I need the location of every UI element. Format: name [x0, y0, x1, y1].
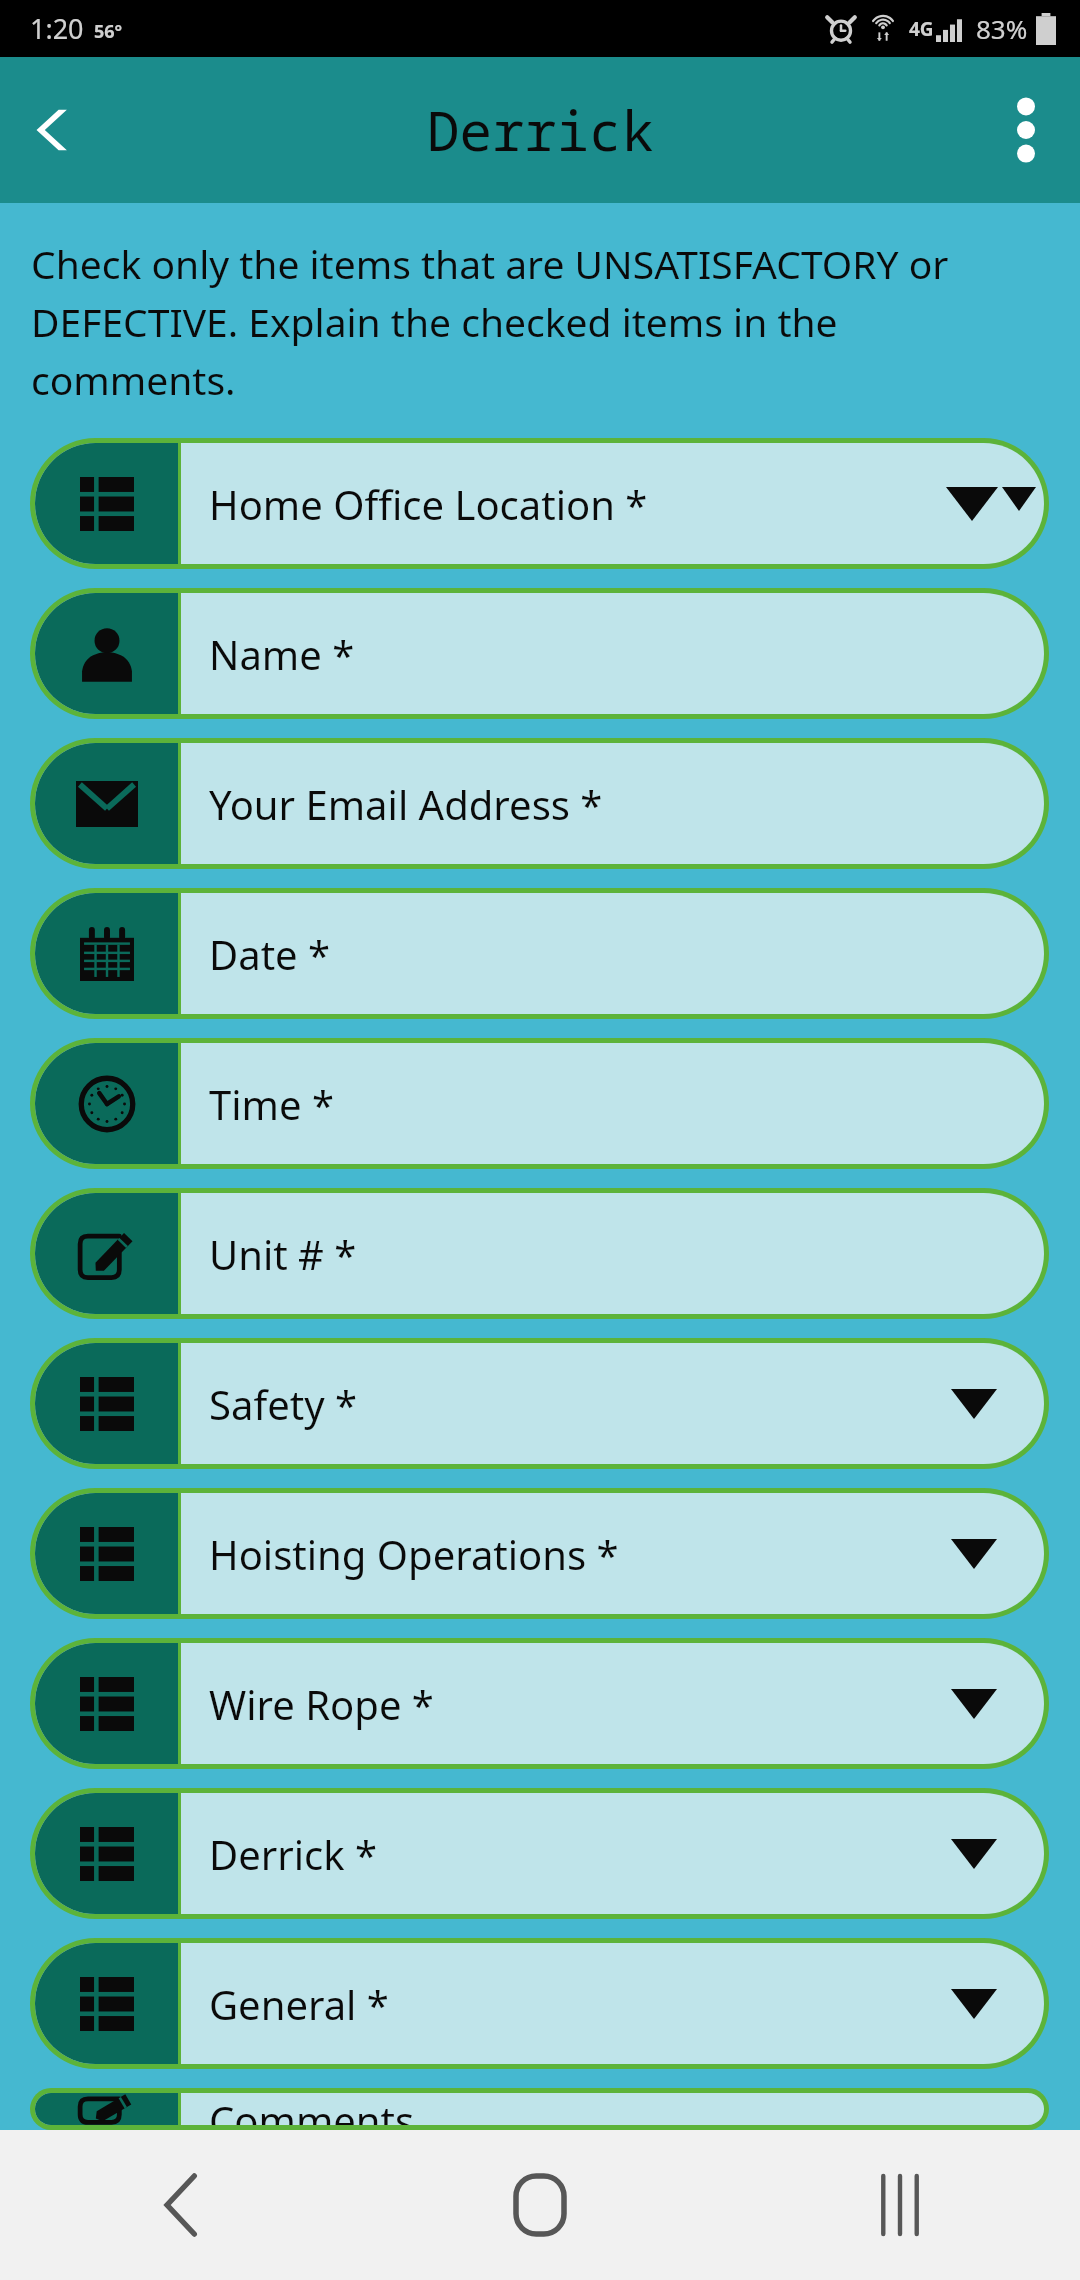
staticText: Hoisting Operations *: [209, 1527, 619, 1581]
button[interactable]: Home Office Location *: [30, 438, 1049, 569]
button[interactable]: Back: [0, 76, 108, 184]
staticText: Time *: [209, 1077, 334, 1131]
staticText: Check only the items that are UNSATISFAC…: [31, 237, 1046, 406]
button[interactable]: Comments: [30, 2088, 1049, 2130]
button[interactable]: Derrick *: [30, 1788, 1049, 1919]
staticText: Home Office Location *: [209, 477, 648, 531]
button[interactable]: More options: [972, 76, 1080, 184]
staticText: Comments: [209, 2093, 415, 2125]
staticText: Derrick *: [209, 1827, 378, 1881]
button[interactable]: Your Email Address *: [30, 738, 1049, 869]
staticText: 83%: [976, 11, 1028, 46]
button[interactable]: Home: [480, 2145, 600, 2265]
staticText: Wire Rope *: [209, 1677, 434, 1731]
staticText: Name *: [209, 627, 355, 681]
staticText: Derrick: [427, 93, 654, 167]
button[interactable]: Back: [120, 2145, 240, 2265]
staticText: 1:20: [30, 10, 84, 47]
button[interactable]: Time *: [30, 1038, 1049, 1169]
staticText: General *: [209, 1977, 389, 2031]
button[interactable]: Name *: [30, 588, 1049, 719]
button[interactable]: Recent apps: [840, 2145, 960, 2265]
button[interactable]: Hoisting Operations *: [30, 1488, 1049, 1619]
staticText: Safety *: [209, 1377, 357, 1431]
staticText: Date *: [209, 927, 331, 981]
staticText: 56°: [94, 19, 123, 44]
button[interactable]: General *: [30, 1938, 1049, 2069]
staticText: 4G: [909, 16, 934, 42]
button[interactable]: Safety *: [30, 1338, 1049, 1469]
staticText: Unit # *: [209, 1227, 357, 1281]
button[interactable]: Unit # *: [30, 1188, 1049, 1319]
button[interactable]: Wire Rope *: [30, 1638, 1049, 1769]
staticText: Your Email Address *: [209, 777, 603, 831]
button[interactable]: Date *: [30, 888, 1049, 1019]
